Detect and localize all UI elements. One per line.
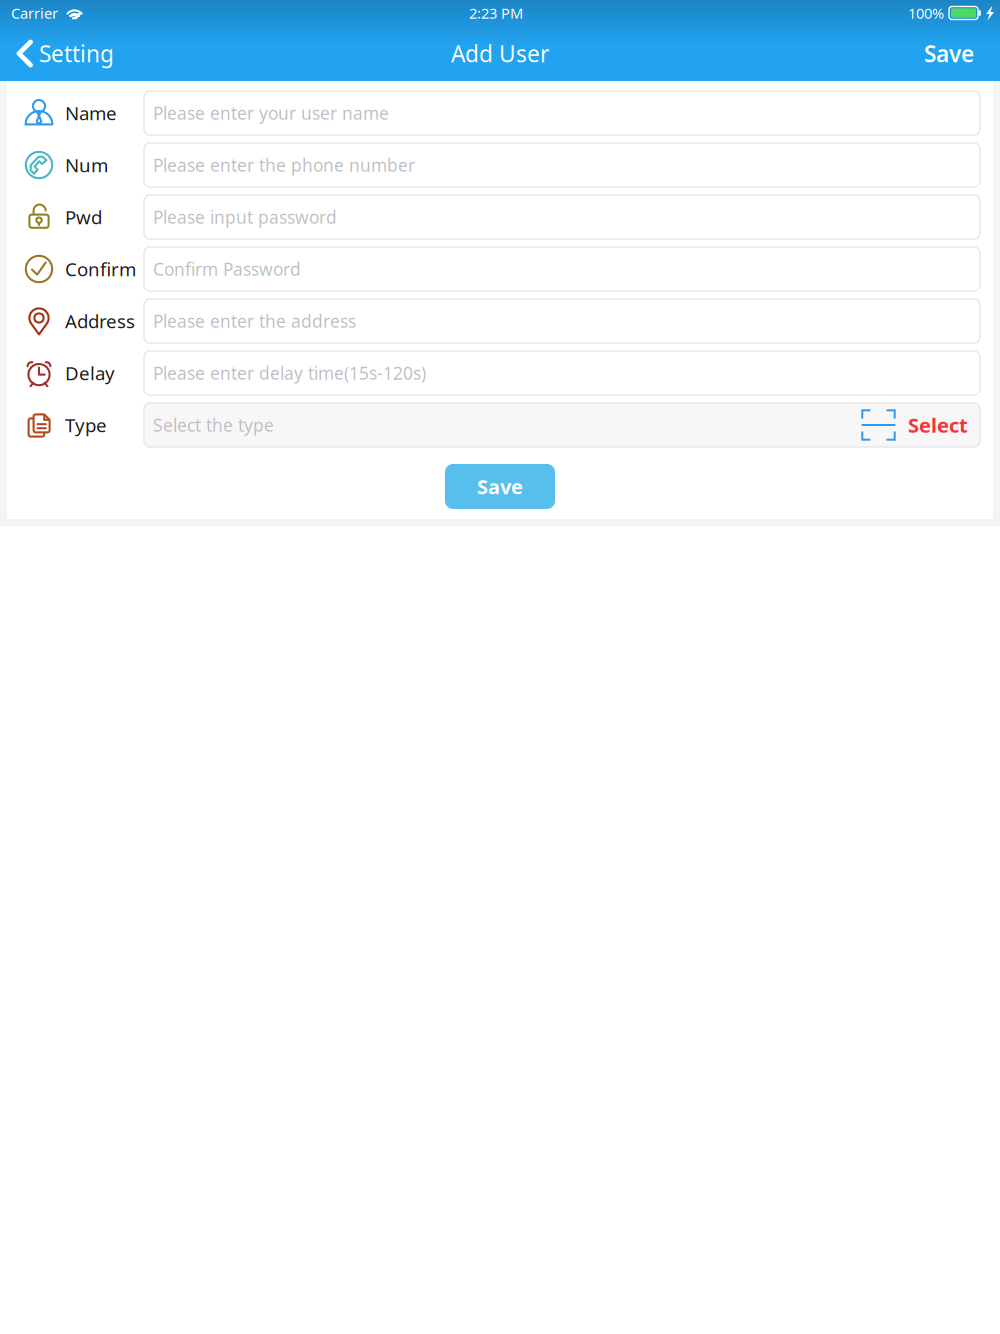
staticText: Type [65,413,107,437]
staticText: Name [65,101,117,125]
staticText: Address [65,309,135,333]
button[interactable]: Setting [0,26,128,80]
staticText: Save [924,38,974,68]
staticText: Please input password [153,205,337,228]
staticText: Delay [65,361,115,385]
staticText: Select the type [153,413,274,436]
button[interactable]: Save [445,464,555,509]
staticText: Please enter delay time(15s-120s) [153,361,426,384]
staticText: Carrier [11,3,58,23]
staticText: Confirm Password [153,257,301,280]
staticText: 100% [908,3,944,23]
button[interactable]: Select [861,403,980,447]
staticText: Please enter the phone number [153,153,415,176]
staticText: Setting [39,38,114,68]
staticText: Select [908,412,968,438]
staticText: Pwd [65,205,102,229]
staticText: Please enter your user name [153,101,389,124]
staticText: Please enter the address [153,309,356,332]
staticText: Confirm [65,257,136,281]
button[interactable]: Save [902,26,1000,80]
staticText: Save [477,473,523,500]
staticText: Add User [451,38,549,68]
staticText: 2:23 PM [469,3,523,23]
staticText: Num [65,153,108,177]
